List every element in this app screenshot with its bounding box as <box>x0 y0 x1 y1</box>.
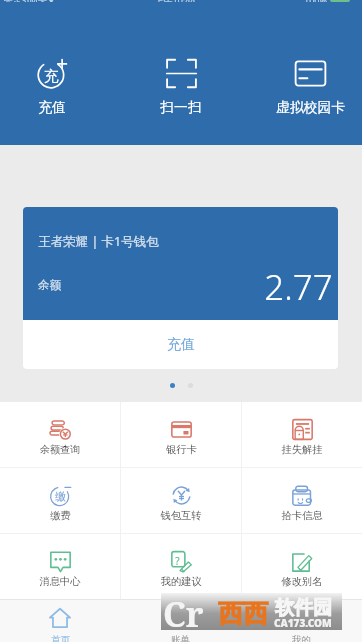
staticText: 修改别名 <box>281 575 323 588</box>
staticText: 缴 <box>55 490 66 503</box>
other: 扫一扫 <box>166 58 197 89</box>
button[interactable]: 拾卡信息 <box>242 468 362 533</box>
staticText: 扫一扫 <box>160 99 202 116</box>
staticText: 消息中心 <box>39 575 81 588</box>
other: 虚拟校园卡 <box>295 58 326 89</box>
staticText: 首页 <box>51 634 70 642</box>
staticText: 西西 <box>218 598 268 629</box>
staticText: 缴费 <box>50 509 71 522</box>
other: 首页 <box>49 607 71 629</box>
button[interactable]: 修改别名 <box>242 534 362 599</box>
button[interactable]: 余额查询 <box>0 402 120 467</box>
staticText: ? <box>175 554 180 568</box>
staticText: 充 <box>44 67 59 86</box>
staticText: 银行卡 <box>166 443 197 456</box>
staticText: 软件园 <box>275 596 332 620</box>
staticText: 虚拟校园卡 <box>276 99 345 116</box>
button[interactable]: 挂失解挂 <box>242 402 362 467</box>
staticText: 100% <box>304 0 327 2</box>
button[interactable]: 缴 <box>0 468 120 533</box>
button[interactable]: 虚拟校园卡 <box>275 0 345 116</box>
button[interactable]: 钱包互转 <box>121 468 241 533</box>
button[interactable]: ? <box>121 534 241 599</box>
button[interactable]: 充值 <box>23 320 338 369</box>
staticText: 先定SIM卡 ▾ <box>3 0 54 2</box>
other: 我的 <box>291 607 313 629</box>
staticText: 我的 <box>292 634 311 642</box>
button[interactable]: 扫一扫 <box>146 0 216 116</box>
staticText: 余额查询 <box>39 443 81 456</box>
staticText: 拾卡信息 <box>281 509 323 522</box>
other: 账单 <box>170 607 192 629</box>
other: 充值 <box>37 58 68 89</box>
staticText: Cr <box>163 591 204 628</box>
button[interactable]: 账单 <box>120 600 241 642</box>
staticText: 账单 <box>171 634 190 642</box>
staticText: 上午10:44 <box>154 0 196 2</box>
staticText: 2.77 <box>264 263 333 311</box>
staticText: 挂失解挂 <box>281 443 323 456</box>
staticText: 充值 <box>167 336 195 354</box>
button[interactable]: 我的 <box>241 600 362 642</box>
staticText: 我的建议 <box>160 575 202 588</box>
staticText: CA173.COM <box>274 616 332 630</box>
button[interactable]: 银行卡 <box>121 402 241 467</box>
staticText: 充值 <box>38 99 66 116</box>
button[interactable]: 首页 <box>0 600 120 642</box>
button[interactable]: 消息中心 <box>0 534 120 599</box>
button[interactable]: 充值 <box>17 0 87 116</box>
staticText: 王者荣耀 | 卡1号钱包 <box>38 233 159 250</box>
staticText: 钱包互转 <box>160 509 202 522</box>
staticText: 余额 <box>38 278 61 292</box>
